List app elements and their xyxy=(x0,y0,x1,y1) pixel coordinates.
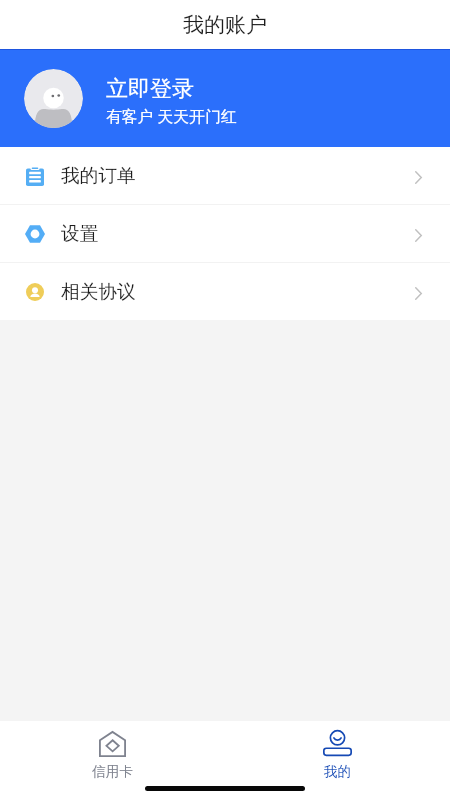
other: 信用卡 xyxy=(99,731,126,757)
staticText: 我的订单 xyxy=(61,164,136,188)
staticText: 设置 xyxy=(61,222,99,246)
staticText: 立即登录 xyxy=(106,75,194,103)
staticText: 有客户 天天开门红 xyxy=(106,105,237,127)
button[interactable]: 立即登录 xyxy=(0,50,450,147)
button[interactable]: 我的订单 xyxy=(0,147,450,204)
button[interactable]: 我的 xyxy=(225,721,450,779)
staticText: 信用卡 xyxy=(92,763,133,779)
button[interactable]: 信用卡 xyxy=(0,721,225,779)
button[interactable]: 设置 xyxy=(0,205,450,262)
staticText: 我的账户 xyxy=(183,12,267,38)
other: 我的 xyxy=(323,730,352,757)
staticText: 相关协议 xyxy=(61,280,136,304)
staticText: 我的 xyxy=(324,763,351,779)
button[interactable]: 相关协议 xyxy=(0,263,450,320)
